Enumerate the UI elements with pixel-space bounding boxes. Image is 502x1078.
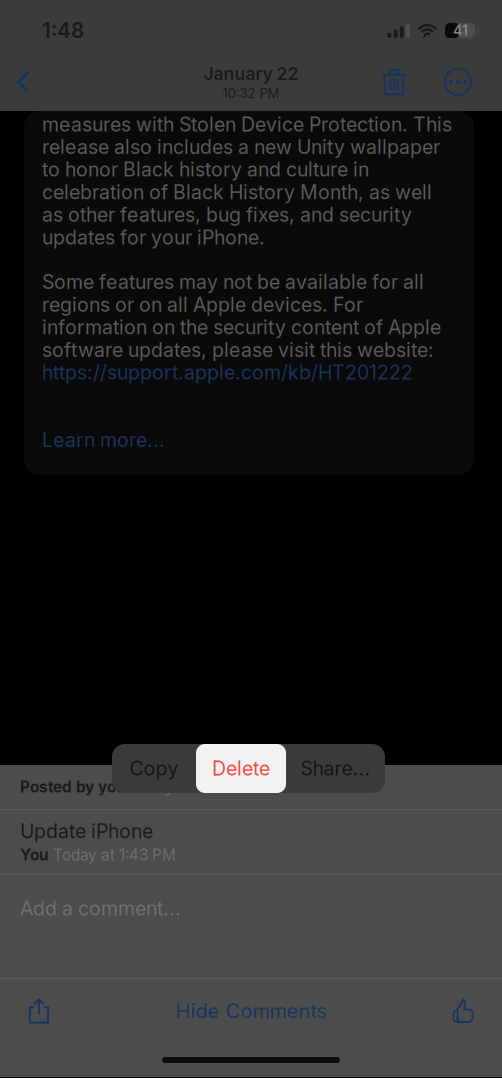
staticText: Copy (129, 757, 178, 780)
staticText: Update iPhone (20, 820, 153, 842)
staticText: Hide Comments (175, 999, 326, 1023)
staticText: Delete (212, 757, 270, 780)
staticText: 41 (453, 22, 468, 39)
staticText: measures with Stolen Device Protection. … (42, 113, 452, 249)
staticText: Some features may not be available for a… (42, 271, 441, 361)
staticText: Learn more... (42, 429, 165, 451)
button[interactable]: More options (436, 53, 480, 111)
button[interactable]: Add a comment... (0, 875, 502, 978)
button[interactable]: Hide Comments (175, 984, 326, 1038)
staticText: Posted by you (20, 778, 126, 796)
staticText: You (20, 845, 49, 864)
staticText: Add a comment... (20, 897, 181, 920)
staticText: 10:32 PM (222, 85, 279, 101)
staticText: Today at 1:43 PM (49, 845, 176, 864)
button[interactable]: Learn more... (42, 429, 165, 451)
staticText: https://support.apple.com/kb/HT201222 (42, 361, 413, 384)
button[interactable]: Update iPhone (0, 810, 502, 874)
button[interactable]: Share (6, 984, 72, 1038)
staticText: Today at 12:33 PM (126, 778, 261, 796)
staticText: Share... (300, 757, 370, 780)
button[interactable]: Share... (286, 744, 385, 793)
staticText: 1:48 (42, 18, 84, 43)
button[interactable]: Delete (196, 744, 286, 793)
button[interactable]: Back (0, 53, 46, 111)
button[interactable]: Delete (370, 53, 418, 111)
staticText: January 22 (203, 63, 298, 84)
button[interactable]: Like (430, 984, 496, 1038)
button[interactable]: Copy (112, 744, 196, 793)
